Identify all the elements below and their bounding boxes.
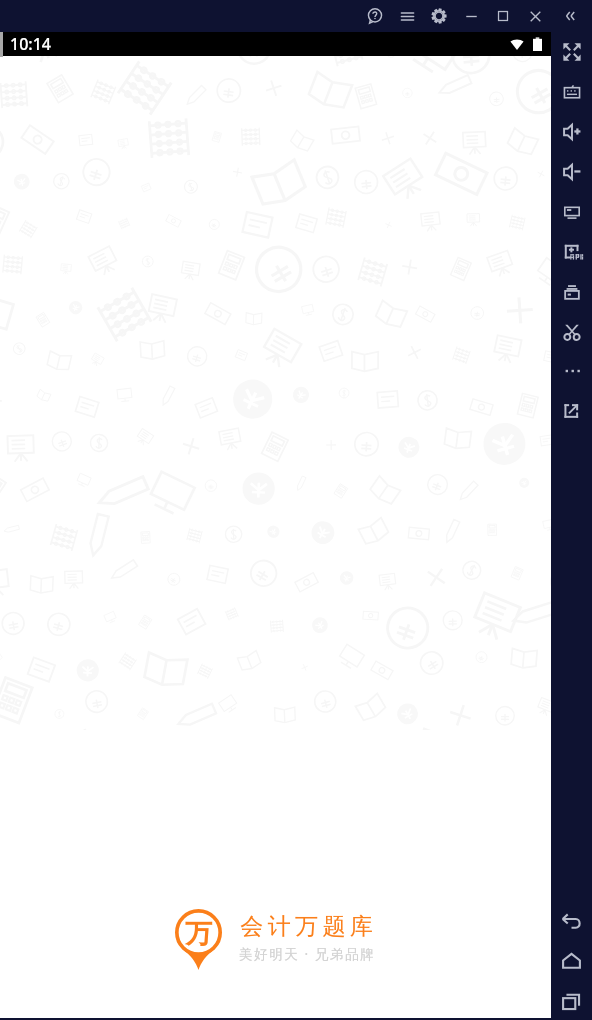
button[interactable]: Recents	[551, 981, 592, 1020]
button[interactable]: Minimize	[455, 0, 487, 32]
button[interactable]: Volume up	[551, 112, 592, 152]
button[interactable]: More	[551, 351, 592, 391]
button[interactable]: Maximize	[487, 0, 519, 32]
button[interactable]: Cut	[551, 312, 592, 352]
button[interactable]: Keyboard	[551, 72, 592, 112]
staticText: 万	[185, 917, 212, 951]
button[interactable]: Collapse	[555, 0, 587, 32]
button[interactable]: Home	[551, 941, 592, 981]
button[interactable]: Volume down	[551, 152, 592, 192]
button[interactable]: Open	[551, 391, 592, 431]
staticText: 10:14	[10, 33, 51, 55]
button[interactable]: Back	[551, 901, 592, 941]
button[interactable]: Fullscreen	[551, 32, 592, 72]
button[interactable]: Install APK	[551, 232, 592, 272]
button[interactable]: Shared folder	[551, 272, 592, 312]
button[interactable]: Help	[359, 0, 391, 32]
button[interactable]: Screenshot	[551, 192, 592, 232]
button[interactable]: Close	[519, 0, 551, 32]
button[interactable]: Menu	[391, 0, 423, 32]
staticText: 会计万题库	[238, 912, 375, 941]
staticText: 美好明天 · 兄弟品牌	[239, 945, 376, 963]
button[interactable]: Settings	[423, 0, 455, 32]
